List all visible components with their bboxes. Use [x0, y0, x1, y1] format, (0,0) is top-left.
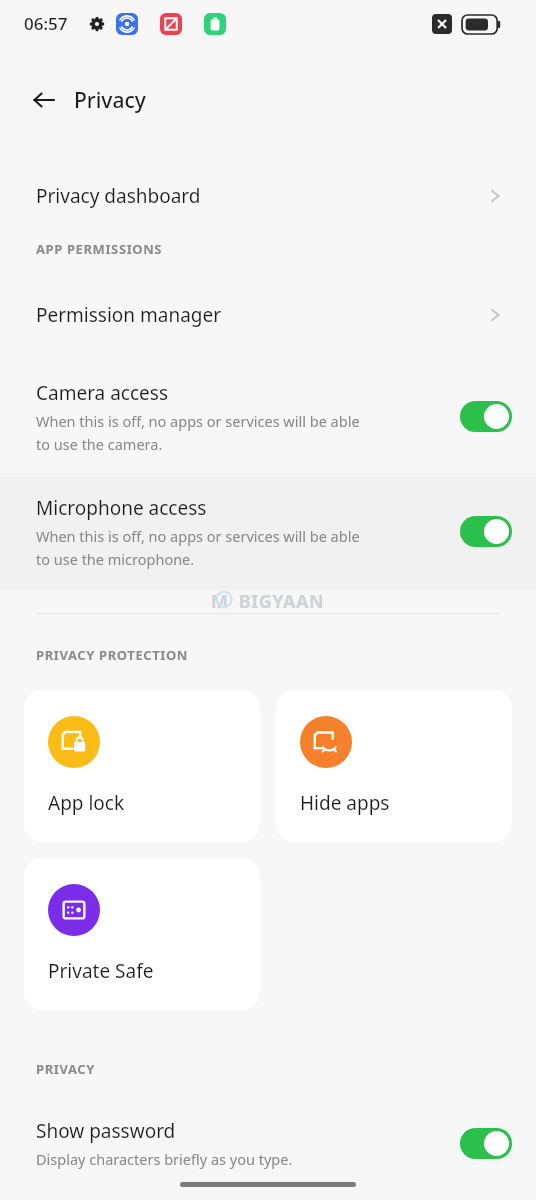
staticText: M BIGYAAN: [211, 589, 325, 614]
staticText: Hide apps: [300, 790, 390, 816]
button[interactable]: Toggle on: [460, 401, 512, 432]
staticText: APP PERMISSIONS: [36, 240, 163, 258]
button[interactable]: Toggle on: [460, 516, 512, 547]
staticText: Privacy dashboard: [36, 183, 484, 209]
button[interactable]: Show password: [0, 1100, 536, 1186]
button[interactable]: Hide apps: [276, 690, 512, 842]
staticText: Camera access: [36, 380, 169, 406]
staticText: 06:57: [24, 12, 68, 35]
button[interactable]: Toggle on: [460, 1128, 512, 1159]
staticText: to use the microphone.: [36, 549, 195, 569]
staticText: Permission manager: [36, 302, 484, 328]
staticText: Private Safe: [48, 958, 154, 984]
staticText: PRIVACY: [36, 1060, 96, 1078]
button[interactable]: Camera access: [0, 360, 536, 473]
staticText: Display characters briefly as you type.: [36, 1149, 293, 1169]
button[interactable]: Privacy dashboard: [0, 168, 536, 224]
button[interactable]: Permission manager: [0, 288, 536, 342]
staticText: When this is off, no apps or services wi…: [36, 411, 360, 431]
button[interactable]: Private Safe: [24, 858, 260, 1010]
button[interactable]: Microphone access: [0, 473, 536, 590]
staticText: PRIVACY PROTECTION: [36, 646, 189, 664]
staticText: When this is off, no apps or services wi…: [36, 526, 360, 546]
staticText: Show password: [36, 1118, 176, 1144]
button[interactable]: Back: [24, 80, 64, 120]
staticText: to use the camera.: [36, 434, 163, 454]
staticText: App lock: [48, 790, 125, 816]
button[interactable]: App lock: [24, 690, 260, 842]
staticText: Microphone access: [36, 495, 207, 521]
staticText: Privacy: [74, 86, 146, 115]
